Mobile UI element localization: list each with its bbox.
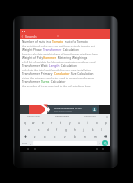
button[interactable]: Weight of Poly	[20, 55, 110, 63]
button[interactable]: Wifi	[94, 146, 100, 152]
button[interactable]: ,	[28, 140, 33, 146]
staticText: g	[65, 128, 67, 132]
button[interactable]: o	[92, 119, 101, 126]
staticText: Transformer Primary	[22, 72, 54, 76]
button[interactable]: Back	[24, 146, 31, 152]
staticText: h	[74, 128, 76, 132]
staticText: u	[78, 121, 80, 125]
staticText: m	[94, 135, 97, 139]
button[interactable]: r	[47, 119, 56, 126]
button[interactable]: Transformer Watt	[20, 63, 110, 71]
staticText: a	[28, 128, 30, 132]
staticText: Calculation	[62, 48, 79, 52]
staticText: Number of nuts in a	[22, 40, 52, 44]
staticText: s	[38, 128, 40, 132]
staticText: k	[92, 128, 94, 132]
staticText: Turns	[41, 80, 50, 84]
staticText: Search	[25, 34, 37, 39]
staticText: Weight Phase	[22, 48, 43, 52]
staticText: Size Calculation	[70, 72, 94, 76]
staticText: f	[56, 128, 58, 132]
staticText: a full list of weights for laboratory me…	[22, 61, 96, 63]
button[interactable]: Battery	[100, 146, 106, 152]
button[interactable]: b	[70, 133, 80, 140]
button[interactable]: c	[50, 133, 60, 140]
staticText: nut of a Tomato	[64, 40, 88, 44]
button[interactable]: Search	[102, 140, 108, 146]
staticText: i	[87, 121, 88, 125]
staticText: with prime coding	[54, 110, 72, 113]
staticText: transforms	[84, 115, 96, 118]
button[interactable]: l	[97, 126, 106, 133]
button[interactable]: Backspace	[100, 133, 110, 140]
button[interactable]: k	[88, 126, 97, 133]
button[interactable]: Transformer	[20, 79, 110, 87]
staticText: the nutritional value you can get from a…	[22, 45, 96, 47]
staticText: Inside Engineering v7.00+	[54, 107, 82, 110]
button[interactable]: m	[90, 133, 100, 140]
button[interactable]: v	[60, 133, 70, 140]
button[interactable]: Inside Engineering v7.00+	[47, 105, 99, 114]
button[interactable]: g	[61, 126, 70, 133]
staticText: t	[60, 121, 62, 125]
staticText: Weight of Poly	[22, 56, 43, 60]
button[interactable]: f	[52, 126, 61, 133]
button[interactable]: d	[43, 126, 52, 133]
button[interactable]: Transformer Primary	[20, 71, 110, 79]
button[interactable]: a	[24, 126, 34, 133]
button[interactable]: w	[29, 119, 38, 126]
button[interactable]: Number of nuts in a	[20, 39, 110, 47]
button[interactable]: s	[34, 126, 43, 133]
staticText: transformer	[27, 115, 41, 118]
button[interactable]: Home	[31, 146, 38, 152]
button[interactable]: i	[83, 119, 92, 126]
staticText: n	[84, 135, 86, 139]
button[interactable]: u	[74, 119, 83, 126]
staticText: how to calculate weight phase of transfo…	[22, 53, 98, 55]
staticText: Transformer	[22, 80, 41, 84]
staticText: w	[32, 121, 35, 125]
staticText: q	[24, 121, 26, 125]
staticText: Calculation	[60, 64, 77, 68]
staticText: j	[83, 128, 84, 132]
button[interactable]: n	[80, 133, 90, 140]
button[interactable]: Clear search	[55, 33, 61, 39]
button[interactable]: ?123	[20, 140, 28, 146]
button[interactable]: Shift	[20, 133, 30, 140]
staticText: sizing the primary conductor used in pow…	[22, 77, 95, 79]
button[interactable]: Install app	[92, 107, 97, 112]
staticText: r	[51, 121, 53, 125]
button[interactable]: t	[56, 119, 65, 126]
staticText: y	[69, 121, 71, 125]
staticText: Transformer Watt	[22, 64, 49, 68]
staticText: Transformer	[43, 48, 62, 52]
button[interactable]: p	[101, 119, 110, 126]
staticText: z	[34, 135, 36, 139]
button[interactable]: Back	[20, 33, 25, 39]
button[interactable]: .	[97, 140, 102, 146]
button[interactable]: h	[70, 126, 79, 133]
staticText: Conductor	[54, 72, 70, 76]
button[interactable]: z	[30, 133, 40, 140]
button[interactable]: j	[79, 126, 88, 133]
button[interactable]: Weight Phase	[20, 47, 110, 55]
button[interactable]: transforms	[76, 114, 104, 119]
button[interactable]: x	[40, 133, 50, 140]
button[interactable]: transformer	[20, 114, 48, 119]
staticText: b	[74, 135, 76, 139]
staticText: x	[44, 135, 46, 139]
staticText: e	[42, 121, 44, 125]
staticText: ?123	[22, 142, 27, 145]
staticText: ,	[30, 141, 31, 145]
staticText: o	[96, 121, 98, 125]
staticText: l	[101, 128, 102, 132]
staticText: d	[47, 128, 49, 132]
button[interactable]: e	[38, 119, 47, 126]
button[interactable]: More suggestions	[104, 114, 110, 119]
button[interactable]: transformers	[48, 114, 76, 119]
staticText: Tomato	[52, 40, 64, 44]
staticText: .	[99, 141, 100, 145]
button[interactable]: y	[65, 119, 74, 126]
button[interactable]: q	[20, 119, 29, 126]
